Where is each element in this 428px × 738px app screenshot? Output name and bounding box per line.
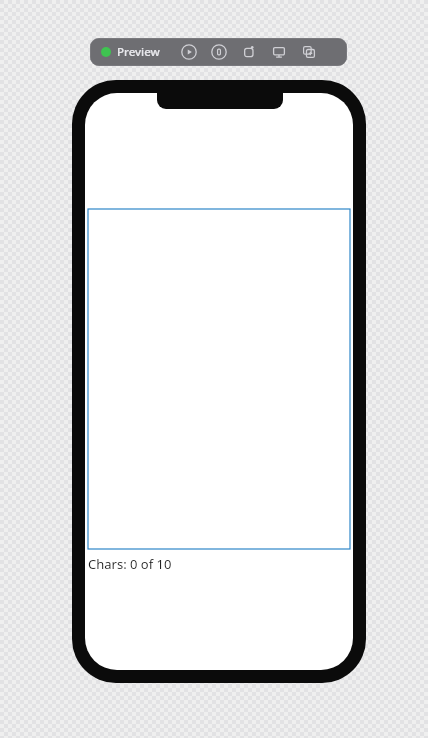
button[interactable]: Copy preview bbox=[300, 43, 318, 61]
button[interactable] bbox=[88, 209, 350, 549]
button[interactable]: Debug preview bbox=[210, 43, 228, 61]
button[interactable]: Run on device bbox=[270, 43, 288, 61]
staticText: Chars: 0 of 10 bbox=[88, 555, 172, 573]
button[interactable]: Preview bbox=[90, 44, 168, 60]
button[interactable]: Run preview bbox=[180, 43, 198, 61]
staticText: Preview bbox=[117, 44, 160, 60]
button[interactable]: Interactive mode bbox=[240, 43, 258, 61]
